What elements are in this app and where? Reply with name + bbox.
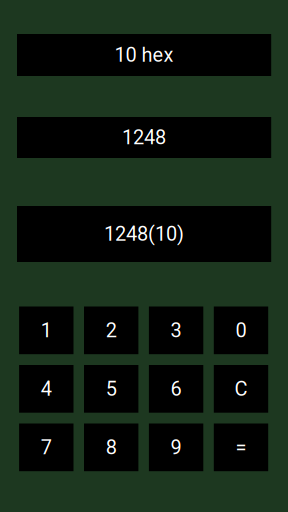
button[interactable]: 9 (149, 423, 203, 471)
staticText: 0 (235, 319, 246, 342)
button[interactable]: 4 (19, 365, 73, 413)
staticText: C (234, 377, 247, 400)
staticText: 2 (106, 319, 117, 342)
staticText: 1248 (122, 126, 166, 149)
button[interactable]: 5 (84, 365, 138, 413)
button[interactable]: 0 (214, 306, 268, 354)
staticText: 1248(10) (104, 222, 184, 246)
staticText: 8 (106, 436, 117, 459)
button[interactable]: 1 (19, 306, 73, 354)
button[interactable]: C (214, 365, 268, 413)
staticText: 3 (171, 319, 182, 342)
button[interactable]: 7 (19, 423, 73, 471)
staticText: 5 (106, 377, 117, 400)
staticText: 7 (41, 436, 52, 459)
button[interactable]: 8 (84, 423, 138, 471)
button[interactable]: = (214, 423, 268, 471)
button[interactable]: 2 (84, 306, 138, 354)
button[interactable]: 6 (149, 365, 203, 413)
button[interactable]: 3 (149, 306, 203, 354)
button[interactable]: 10 hex (17, 34, 271, 76)
staticText: 6 (171, 377, 182, 400)
staticText: 4 (41, 377, 52, 400)
staticText: 10 hex (115, 43, 174, 67)
staticText: 9 (171, 436, 182, 459)
staticText: 1 (41, 319, 52, 342)
staticText: = (235, 436, 246, 459)
